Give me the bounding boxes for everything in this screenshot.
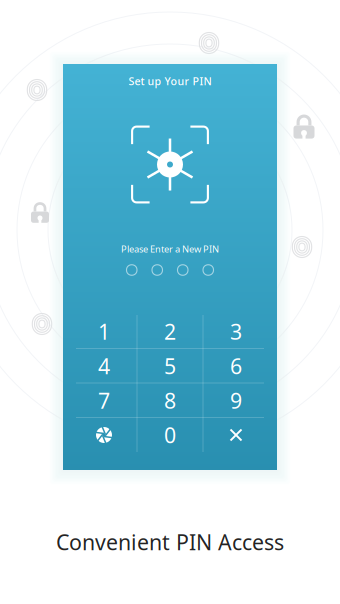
staticText: Convenient PIN Access bbox=[56, 528, 284, 556]
staticText: 9 bbox=[230, 386, 242, 415]
button[interactable]: 6 bbox=[203, 349, 269, 383]
button[interactable]: 1 bbox=[71, 314, 137, 349]
staticText: Set up Your PIN bbox=[128, 74, 211, 88]
staticText: 4 bbox=[98, 352, 110, 380]
button[interactable]: Scan bbox=[71, 418, 137, 452]
button[interactable]: 4 bbox=[71, 349, 137, 383]
staticText: 7 bbox=[98, 386, 110, 415]
staticText: 3 bbox=[230, 317, 242, 346]
staticText: 2 bbox=[164, 317, 176, 346]
staticText: 6 bbox=[230, 352, 242, 380]
staticText: 5 bbox=[164, 352, 176, 380]
button[interactable]: 9 bbox=[203, 383, 269, 418]
button[interactable]: 5 bbox=[137, 349, 203, 383]
staticText: 1 bbox=[98, 317, 110, 346]
button[interactable]: 3 bbox=[203, 314, 269, 349]
staticText: 0 bbox=[164, 421, 176, 449]
button[interactable]: 7 bbox=[71, 383, 137, 418]
button[interactable]: 2 bbox=[137, 314, 203, 349]
button[interactable]: 0 bbox=[137, 418, 203, 452]
staticText: Please Enter a New PIN bbox=[121, 243, 219, 255]
button[interactable]: 8 bbox=[137, 383, 203, 418]
staticText: 8 bbox=[164, 386, 176, 415]
button[interactable]: Delete bbox=[203, 418, 269, 452]
